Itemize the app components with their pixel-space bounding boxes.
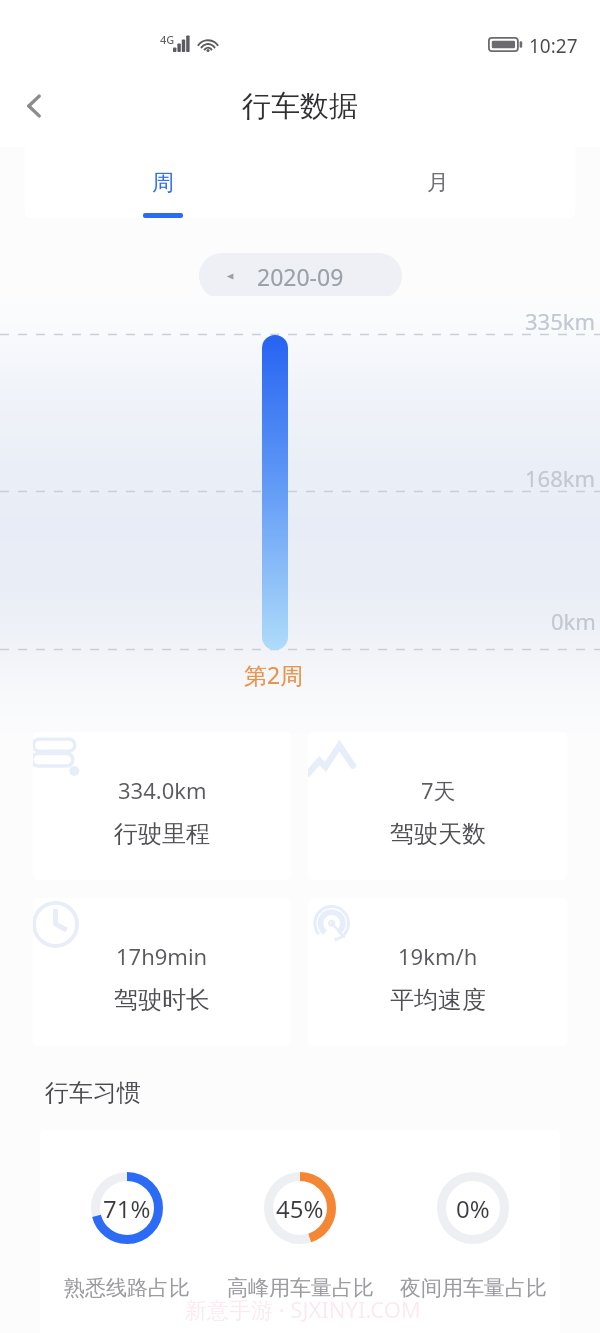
button[interactable]: 334.0km bbox=[33, 732, 291, 880]
staticText: 驾驶天数 bbox=[390, 819, 486, 849]
staticText: 行车习惯 bbox=[45, 1078, 141, 1108]
staticText: 第2周 bbox=[244, 659, 304, 690]
button[interactable]: 7天 bbox=[308, 732, 567, 880]
staticText: 168km bbox=[525, 463, 596, 493]
staticText: 驾驶时长 bbox=[114, 985, 210, 1015]
staticText: 10:27 bbox=[529, 33, 578, 59]
staticText: 行驶里程 bbox=[114, 819, 210, 849]
staticText: 2020-09 bbox=[257, 261, 344, 292]
staticText: 19km/h bbox=[398, 941, 478, 971]
staticText: 0km bbox=[551, 606, 596, 636]
staticText: 335km bbox=[525, 306, 596, 336]
staticText: 0% bbox=[456, 1192, 490, 1225]
button[interactable]: 2020-09 bbox=[199, 253, 402, 299]
staticText: 平均速度 bbox=[390, 985, 486, 1015]
staticText: 月 bbox=[427, 169, 449, 197]
staticText: 新意手游 · SJXINYI.COM bbox=[185, 1294, 421, 1324]
button[interactable]: Back bbox=[12, 84, 56, 128]
staticText: 熟悉线路占比 bbox=[64, 1275, 190, 1301]
staticText: 高峰用车量占比 bbox=[227, 1275, 374, 1301]
staticText: 夜间用车量占比 bbox=[400, 1275, 547, 1301]
button[interactable]: 19km/h bbox=[308, 898, 567, 1046]
staticText: 71% bbox=[103, 1192, 151, 1225]
button[interactable]: 月 bbox=[300, 147, 575, 218]
staticText: 334.0km bbox=[118, 775, 207, 805]
button[interactable]: 17h9min bbox=[33, 898, 291, 1046]
staticText: 45% bbox=[276, 1192, 324, 1225]
staticText: 7天 bbox=[421, 775, 456, 805]
staticText: 周 bbox=[152, 169, 174, 197]
staticText: 4G bbox=[160, 32, 175, 47]
staticText: 行车数据 bbox=[242, 88, 358, 125]
button[interactable]: 周 bbox=[25, 147, 300, 218]
staticText: 17h9min bbox=[116, 941, 208, 971]
